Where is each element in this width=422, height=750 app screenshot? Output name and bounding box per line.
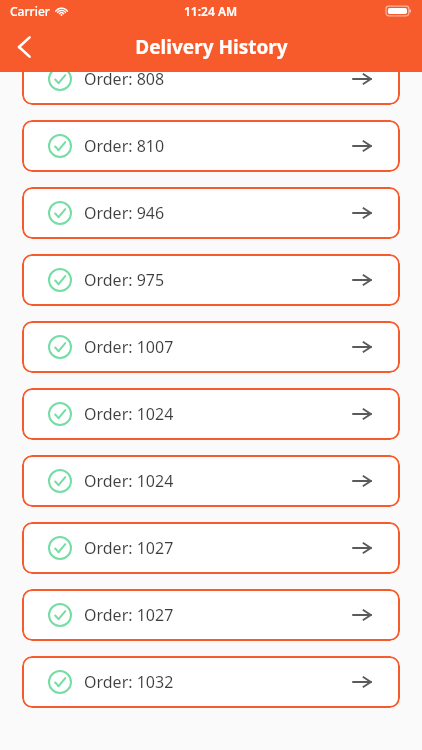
staticText: Delivery History [135,34,288,60]
staticText: Order: 810 [84,135,165,157]
staticText: Order: 975 [84,269,165,291]
button[interactable]: Order: 1027 [22,522,400,574]
staticText: Order: 1007 [84,336,174,358]
button[interactable]: Order: 1007 [22,321,400,373]
button[interactable]: Order: 1032 [22,656,400,708]
staticText: Order: 1027 [84,537,174,559]
button[interactable]: Order: 808 [22,53,400,105]
button[interactable]: Order: 975 [22,254,400,306]
staticText: Order: 1032 [84,671,174,693]
staticText: Carrier [10,3,50,19]
staticText: Order: 946 [84,202,165,224]
button[interactable]: Order: 810 [22,120,400,172]
staticText: Order: 808 [84,68,165,90]
staticText: Order: 1024 [84,403,174,425]
button[interactable]: Order: 946 [22,187,400,239]
button[interactable]: Back [0,23,48,71]
staticText: Order: 1024 [84,470,174,492]
button[interactable]: Order: 1027 [22,589,400,641]
staticText: Order: 1027 [84,604,174,626]
staticText: 11:24 AM [184,3,238,19]
button[interactable]: Order: 1024 [22,388,400,440]
button[interactable]: Order: 1024 [22,455,400,507]
